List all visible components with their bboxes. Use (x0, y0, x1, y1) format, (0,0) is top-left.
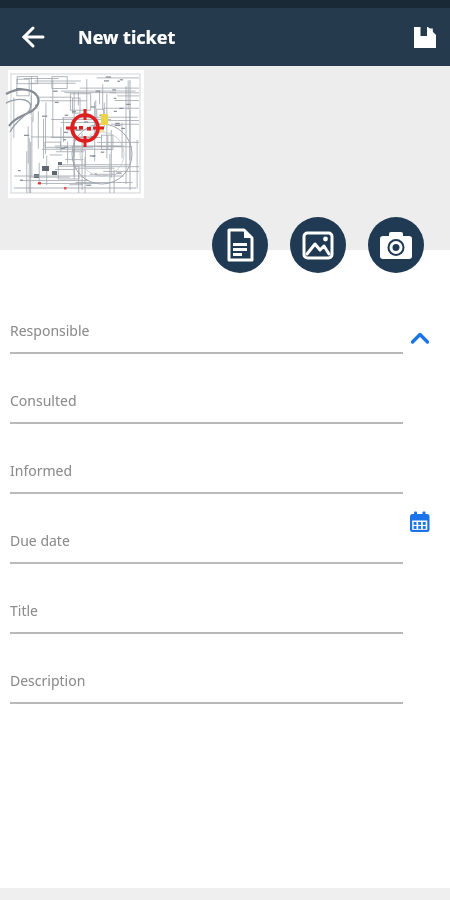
button[interactable]: Description (0, 660, 450, 706)
button[interactable] (406, 508, 434, 536)
button[interactable]: Responsible (0, 310, 450, 356)
button[interactable]: Consulted (0, 380, 450, 426)
staticText: Consulted (10, 391, 77, 410)
staticText: Title (10, 601, 38, 620)
button[interactable] (368, 217, 424, 273)
button[interactable] (212, 217, 268, 273)
button[interactable] (290, 217, 346, 273)
button[interactable] (12, 16, 54, 58)
staticText: Informed (10, 461, 73, 480)
button[interactable]: Informed (0, 450, 450, 496)
button[interactable]: Title (0, 590, 450, 636)
button[interactable] (404, 16, 446, 58)
button[interactable] (8, 70, 144, 198)
staticText: New ticket (78, 25, 176, 50)
button[interactable]: Due date (0, 520, 450, 566)
button[interactable] (406, 324, 434, 352)
staticText: Responsible (10, 321, 90, 340)
staticText: Description (10, 671, 86, 690)
staticText: Due date (10, 531, 70, 550)
